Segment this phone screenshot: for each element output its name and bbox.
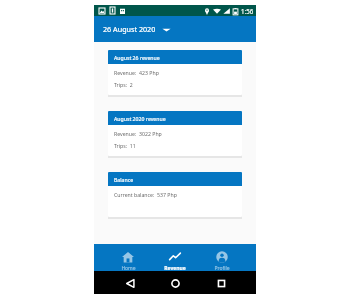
button[interactable]: Back (120, 273, 140, 293)
button[interactable]: Home (105, 244, 151, 271)
staticText: Trips: 2 (114, 81, 133, 88)
staticText: Home (121, 265, 136, 271)
button[interactable]: Revenue (151, 244, 198, 271)
staticText: Revenue (164, 265, 186, 271)
staticText: Profile (214, 265, 230, 271)
staticText: Revenue: 423 Php (114, 69, 159, 76)
button[interactable]: Balance (108, 172, 242, 217)
staticText: 26 August 2020 (103, 24, 156, 34)
staticText: August 2020 revenue (114, 115, 166, 122)
button[interactable]: Profile (198, 244, 245, 271)
staticText: 1:56 (241, 7, 254, 15)
button[interactable]: Recents (211, 273, 231, 293)
staticText: August 26 revenue (114, 54, 160, 61)
button[interactable]: August 26 revenue (108, 50, 242, 95)
staticText: Balance (114, 176, 134, 183)
staticText: Current balance: 537 Php (114, 191, 177, 198)
staticText: Revenue: 3022 Php (114, 130, 162, 137)
button[interactable]: Home (165, 273, 185, 293)
button[interactable]: 26 August 2020 (103, 24, 171, 34)
button[interactable]: August 2020 revenue (108, 111, 242, 156)
staticText: Trips: 11 (114, 142, 136, 149)
